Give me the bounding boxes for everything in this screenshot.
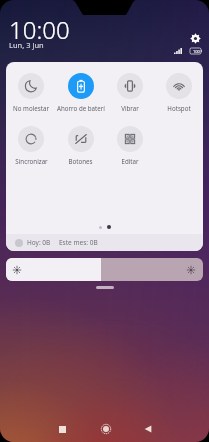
button[interactable]: Home bbox=[94, 417, 118, 441]
button[interactable]: Ahorro de baterí bbox=[56, 73, 105, 112]
button[interactable]: Recent apps bbox=[50, 417, 74, 441]
button[interactable]: No molestar bbox=[6, 73, 56, 112]
staticText: 10:00 bbox=[9, 13, 70, 46]
button[interactable]: Botones bbox=[56, 126, 105, 165]
staticText: Lun, 3 Jun bbox=[9, 40, 44, 50]
staticText: Botones bbox=[68, 157, 93, 165]
button[interactable] bbox=[6, 258, 203, 281]
staticText: 100 bbox=[193, 49, 200, 54]
button[interactable]: Sincronizar bbox=[6, 126, 56, 165]
staticText: Ahorro de baterí bbox=[57, 104, 105, 112]
button[interactable]: Hoy: 0B bbox=[6, 234, 203, 251]
button[interactable]: Vibrar bbox=[105, 73, 154, 112]
staticText: Editar bbox=[121, 157, 139, 165]
staticText: Hoy: 0B bbox=[27, 238, 51, 247]
button[interactable]: Settings bbox=[188, 31, 202, 45]
staticText: Vibrar bbox=[121, 104, 139, 112]
staticText: Este mes: 0B bbox=[59, 238, 98, 247]
button[interactable]: Hotspot bbox=[154, 73, 203, 112]
button[interactable]: Editar bbox=[105, 126, 154, 165]
staticText: Sincronizar bbox=[15, 157, 48, 165]
staticText: No molestar bbox=[13, 104, 49, 112]
staticText: Hotspot bbox=[167, 104, 191, 112]
button[interactable]: Back bbox=[136, 417, 160, 441]
